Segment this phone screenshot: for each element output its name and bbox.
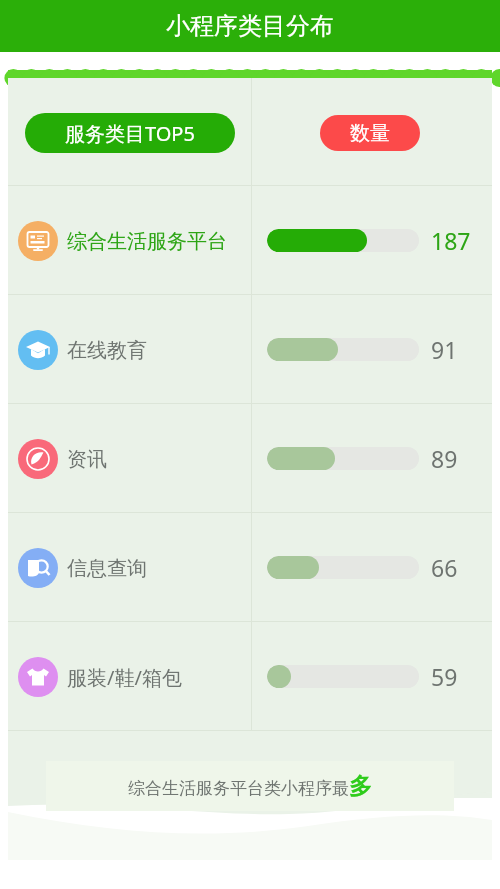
staticText: 89 [431,443,458,474]
button[interactable]: 服装/鞋/箱包 [8,622,492,731]
staticText: 小程序类目分布 [166,11,334,41]
staticText: 在线教育 [67,338,147,363]
staticText: 资讯 [67,447,107,472]
staticText: 66 [431,552,458,583]
button[interactable]: 综合生活服务平台 [8,186,492,295]
staticText: 59 [431,661,458,692]
staticText: 187 [431,225,471,256]
button[interactable]: 在线教育 [8,295,492,404]
button[interactable]: 信息查询 [8,513,492,622]
staticText: 综合生活服务平台 [67,229,227,254]
button[interactable]: 资讯 [8,404,492,513]
button[interactable]: 数量 [320,115,420,151]
staticText: 信息查询 [67,556,147,581]
button[interactable]: 服务类目TOP5 [25,113,235,153]
staticText: 服务类目TOP5 [65,120,195,147]
staticText: 服装/鞋/箱包 [67,664,182,691]
staticText: 综合生活服务平台类小程序最多 [128,772,372,801]
staticText: 91 [431,334,458,365]
staticText: 数量 [350,121,390,146]
